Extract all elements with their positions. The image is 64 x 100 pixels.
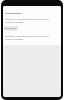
staticText: Making a list of every question that you… bbox=[5, 18, 50, 21]
staticText: Programming bbox=[5, 11, 22, 14]
staticText: to ask at the exam bbox=[5, 21, 24, 24]
button[interactable]: Show answer bbox=[4, 26, 18, 31]
staticText: Show answer bbox=[4, 27, 18, 30]
staticText: Making a list of every question that you… bbox=[5, 35, 50, 38]
staticText: to ask at the exam bbox=[5, 38, 24, 41]
